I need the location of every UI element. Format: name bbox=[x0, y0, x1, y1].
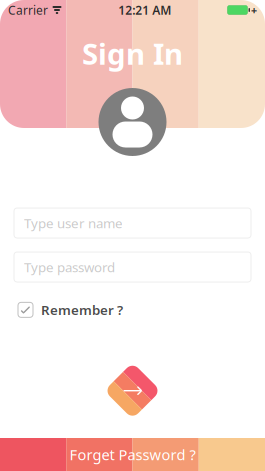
staticText: Forget Password ? bbox=[69, 445, 195, 464]
staticText: Type user name bbox=[24, 214, 123, 232]
staticText: Sign In bbox=[82, 34, 183, 73]
staticText: Remember ? bbox=[41, 301, 123, 319]
button[interactable]: Remember ? bbox=[18, 298, 123, 322]
staticText: 12:21 AM bbox=[118, 2, 171, 18]
button[interactable]: Forget Password ? bbox=[0, 438, 265, 471]
button[interactable]: Sign In bbox=[103, 362, 161, 420]
staticText: + bbox=[251, 3, 257, 17]
staticText: Carrier bbox=[8, 2, 48, 18]
staticText: Type password bbox=[24, 258, 115, 276]
